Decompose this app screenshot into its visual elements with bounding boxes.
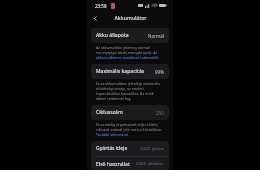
button[interactable]: Gyártás ideje <box>91 141 169 156</box>
staticText: Maximális kapacitás <box>96 68 155 75</box>
button[interactable]: Ciklusszám <box>91 105 169 120</box>
button[interactable]: Akku állapota <box>91 28 169 43</box>
staticText: Az akkumulátor jelenleg normál mennyiség… <box>96 45 164 60</box>
staticText: Első használat <box>96 161 136 166</box>
staticText: Normál <box>148 33 164 39</box>
staticText: 2024. június <box>140 146 164 152</box>
staticText: Akkumulátor <box>114 15 147 22</box>
staticText: 250 <box>156 110 164 116</box>
staticText: Gyártás ideje <box>96 145 140 152</box>
staticText: 2024. október <box>136 161 164 166</box>
button[interactable]: Első használat <box>91 157 169 170</box>
staticText: 23:58 <box>95 3 107 9</box>
button[interactable]: Maximális kapacitás <box>91 64 169 79</box>
staticText: Ciklusszám <box>96 109 156 116</box>
staticText: 99% <box>155 69 164 75</box>
staticText: Ez az akkumulátor jelenlegi maximális tö… <box>96 81 164 101</box>
button[interactable]: Vissza <box>89 12 101 24</box>
staticText: Akku állapota <box>96 32 148 39</box>
staticText: Ez az eddig végrehajtott teljes töltési … <box>96 122 164 137</box>
